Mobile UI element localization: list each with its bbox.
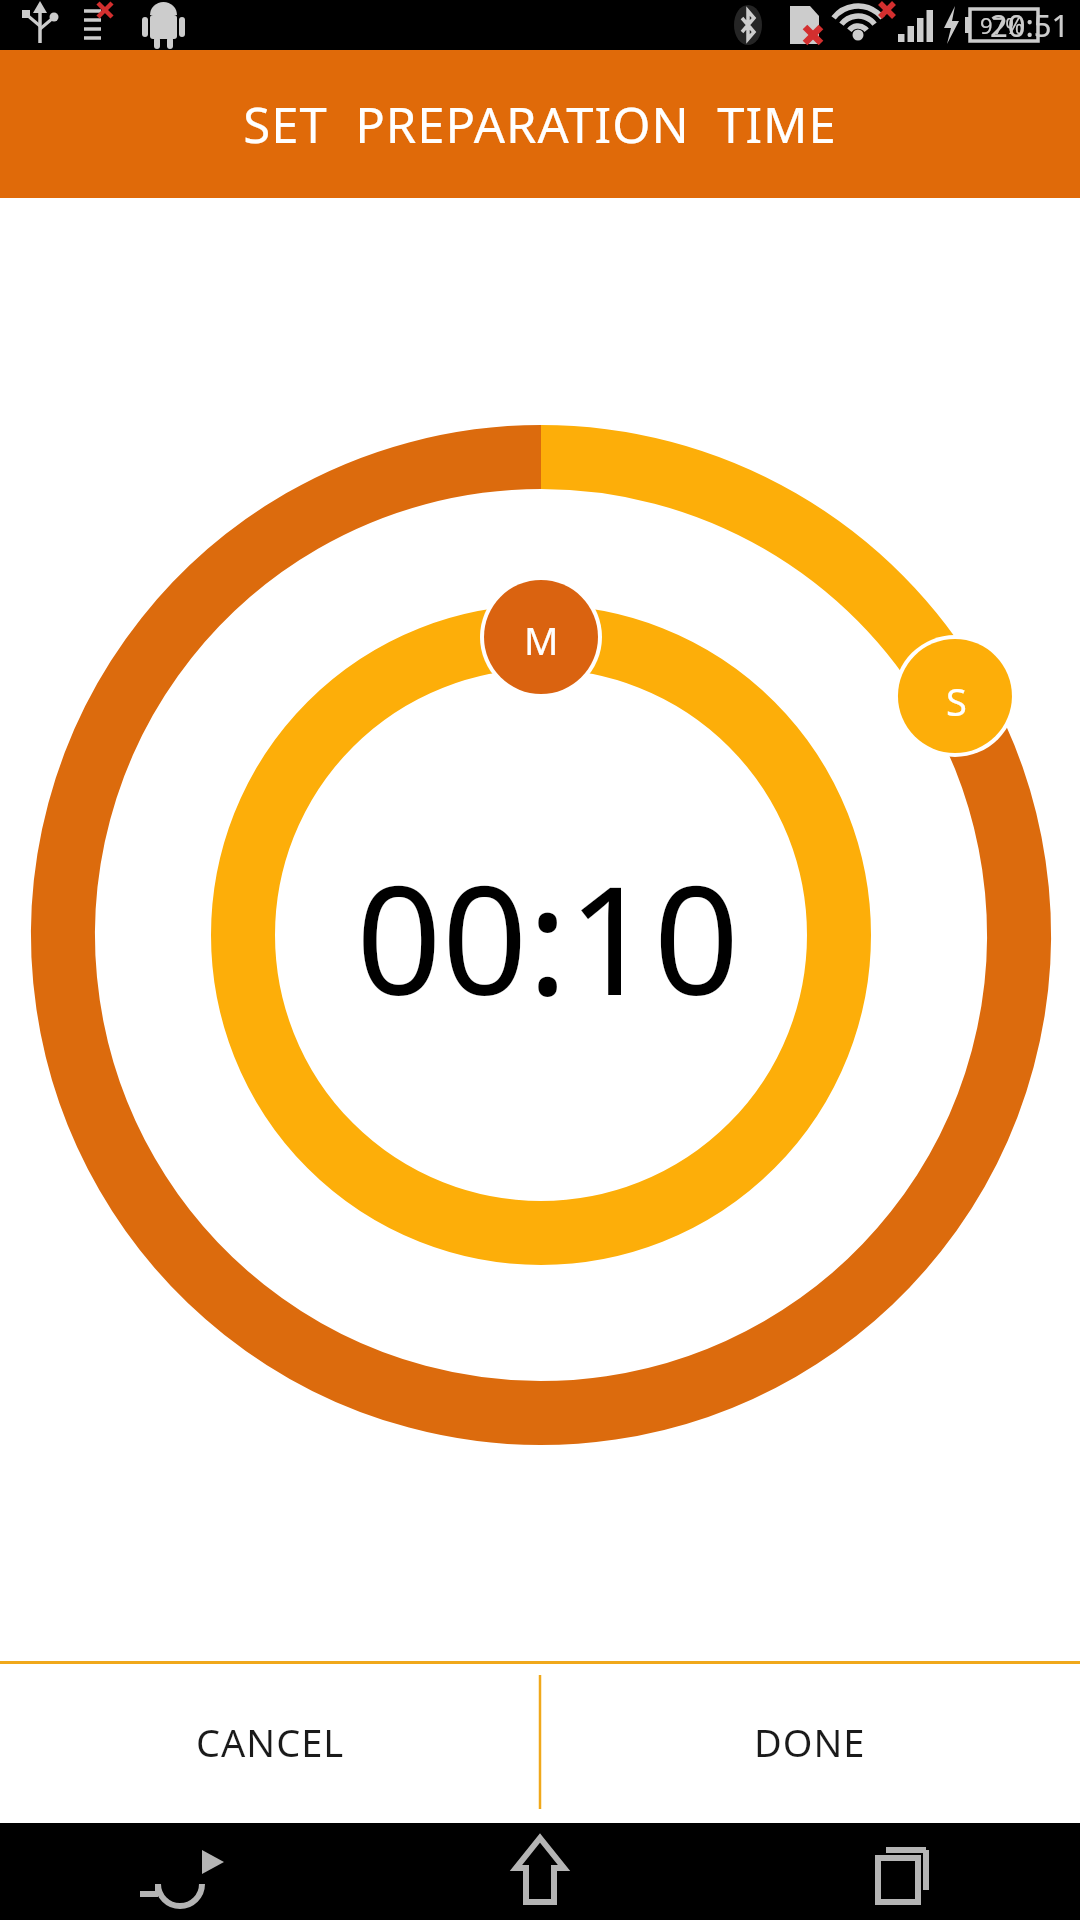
button[interactable]: S [946, 675, 967, 727]
button[interactable]: DONE [540, 1661, 1080, 1823]
button[interactable]: CANCEL [0, 1661, 540, 1823]
staticText: DONE [754, 1716, 866, 1768]
staticText: CANCEL [196, 1716, 345, 1768]
button[interactable]: Back [0, 1823, 360, 1920]
button[interactable]: Home [360, 1823, 720, 1920]
staticText: 00:10 [356, 835, 740, 1039]
button[interactable]: Recents [720, 1823, 1080, 1920]
staticText: SET PREPARATION TIME [243, 91, 837, 158]
button[interactable]: M [524, 614, 559, 666]
staticText: 20:51 [990, 4, 1070, 46]
staticText: 97% [980, 10, 1024, 40]
